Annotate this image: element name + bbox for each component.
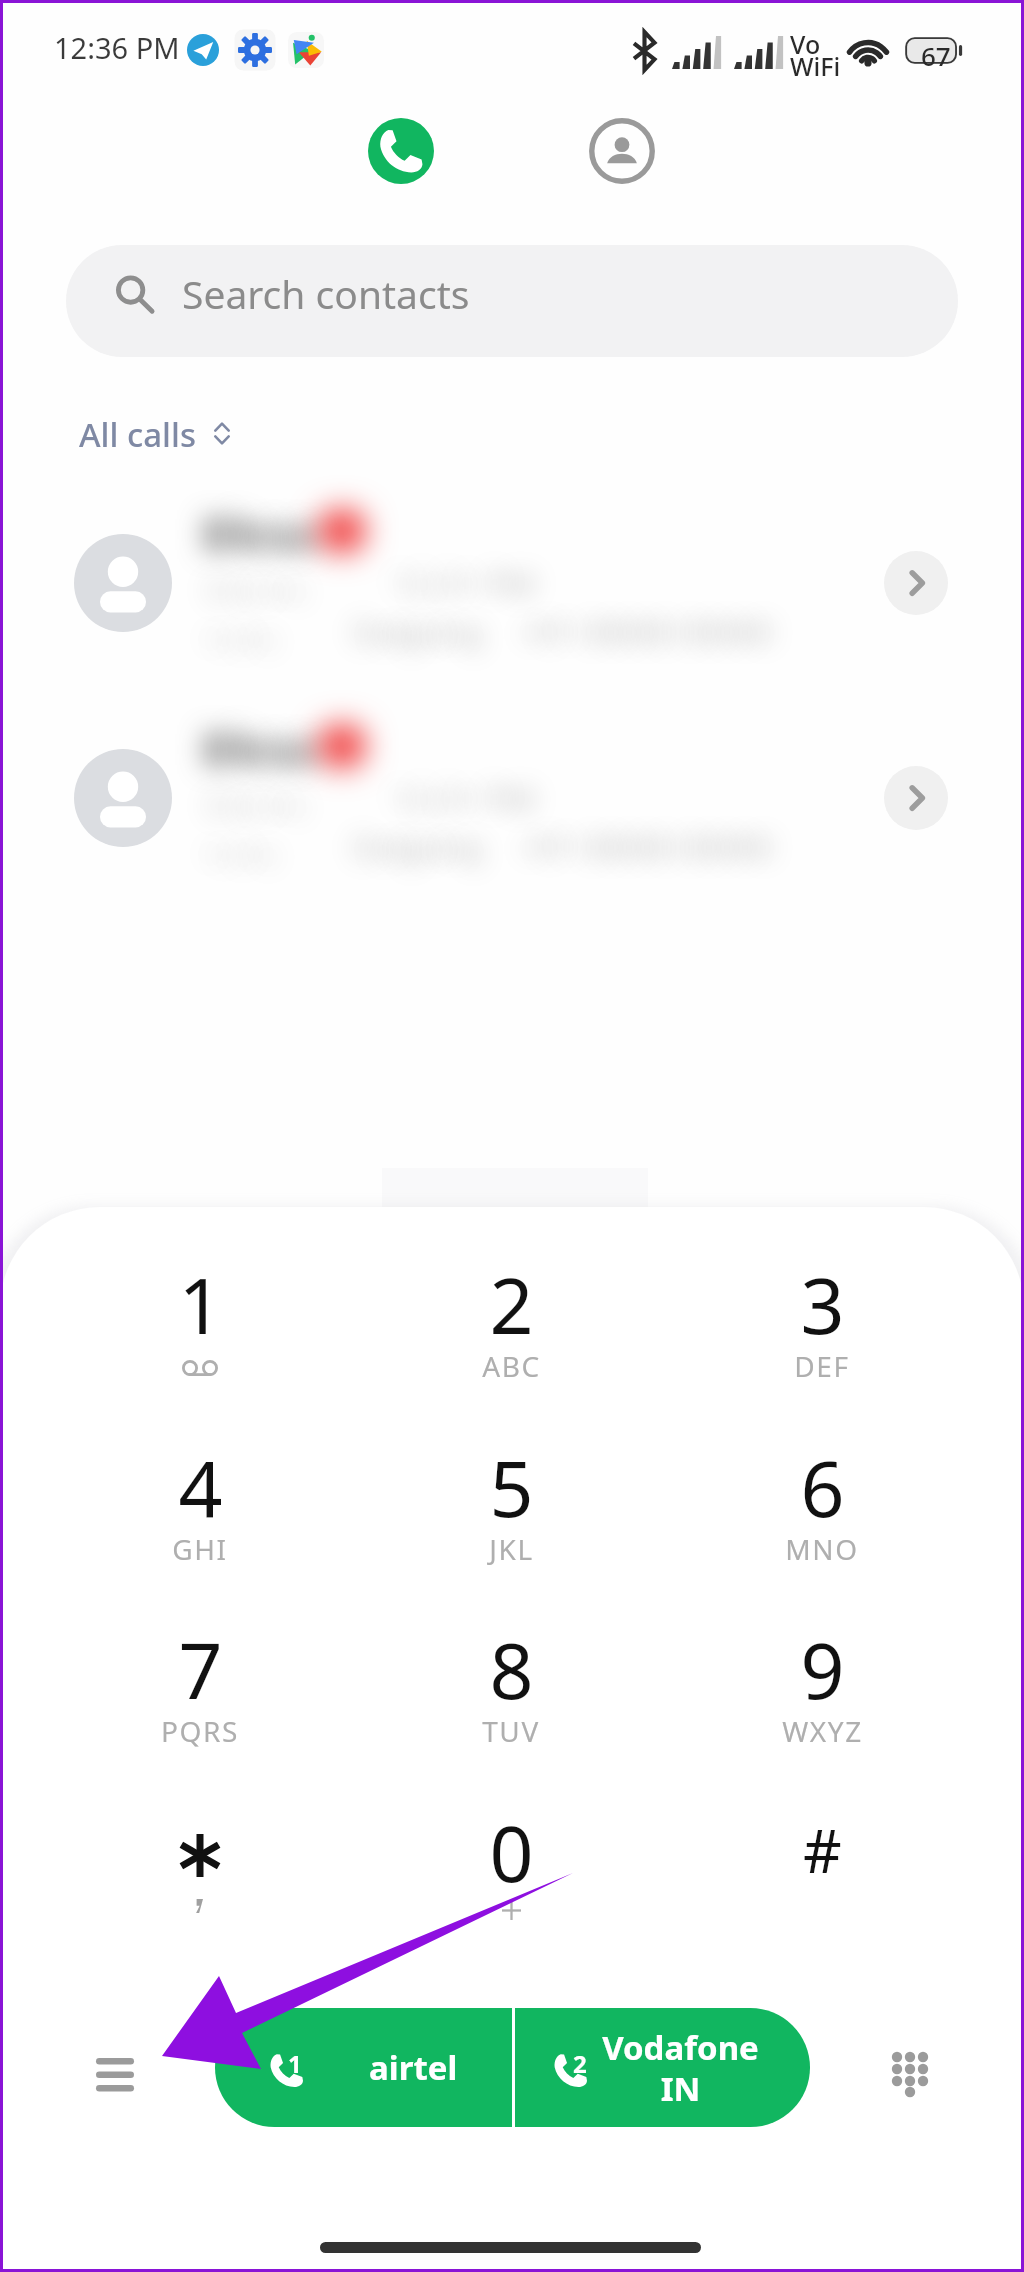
button[interactable]: 6 — [672, 1415, 972, 1593]
button[interactable]: All calls — [70, 400, 250, 470]
staticText: 3 — [800, 1252, 845, 1357]
staticText: WXYZ — [782, 1712, 863, 1750]
staticText: 5 — [489, 1435, 534, 1540]
staticText: Vo — [790, 27, 821, 61]
button[interactable]: 9 — [672, 1597, 972, 1775]
button[interactable] — [515, 2008, 810, 2127]
button[interactable]: Search contacts — [66, 245, 958, 357]
staticText: 1 — [178, 1252, 223, 1357]
staticText: Search contacts — [182, 267, 470, 320]
staticText: GHI — [172, 1530, 228, 1568]
staticText: 6 — [800, 1435, 845, 1540]
button[interactable]: # — [672, 1780, 972, 1958]
staticText: 1 — [288, 2047, 302, 2080]
staticText: 0 — [489, 1800, 534, 1905]
button[interactable]: Contacts — [589, 118, 655, 184]
staticText: TUV — [482, 1712, 540, 1750]
staticText: 4 — [178, 1435, 223, 1540]
staticText: All calls — [79, 412, 196, 457]
button[interactable]: 2 — [361, 1232, 661, 1410]
button[interactable]: Call details — [0, 691, 1024, 905]
staticText: 9 — [800, 1617, 845, 1722]
button[interactable]: 4 — [50, 1415, 350, 1593]
staticText: MNO — [785, 1530, 859, 1568]
staticText: WiFi — [790, 49, 841, 83]
button[interactable]: 7 — [50, 1597, 350, 1775]
button[interactable]: 1 — [50, 1232, 350, 1410]
button[interactable]: Recents — [368, 118, 434, 184]
button[interactable]: Call details — [0, 476, 1024, 690]
staticText: 67 — [921, 38, 951, 73]
staticText: 8 — [489, 1617, 534, 1722]
button[interactable]: Call details — [884, 551, 948, 615]
staticText: PQRS — [161, 1712, 239, 1750]
button[interactable]: Call details — [884, 766, 948, 830]
button[interactable] — [215, 2008, 512, 2127]
staticText: airtel — [369, 2045, 458, 2090]
staticText: 2 — [489, 1252, 534, 1357]
staticText: # — [803, 1809, 842, 1891]
button[interactable]: 8 — [361, 1597, 661, 1775]
button[interactable]: Dialpad — [873, 2033, 947, 2107]
button[interactable] — [50, 1780, 350, 1958]
staticText: 7 — [178, 1617, 223, 1722]
staticText: 2 — [573, 2047, 587, 2080]
staticText: ABC — [482, 1347, 541, 1385]
staticText: Vodafone IN — [602, 2025, 759, 2111]
staticText: JKL — [489, 1530, 534, 1568]
button[interactable]: 0 — [361, 1780, 661, 1958]
button[interactable]: 5 — [361, 1415, 661, 1593]
staticText: DEF — [794, 1347, 850, 1385]
button[interactable]: Menu — [78, 2033, 152, 2107]
staticText: 12:36 PM — [54, 28, 180, 67]
button[interactable]: 3 — [672, 1232, 972, 1410]
